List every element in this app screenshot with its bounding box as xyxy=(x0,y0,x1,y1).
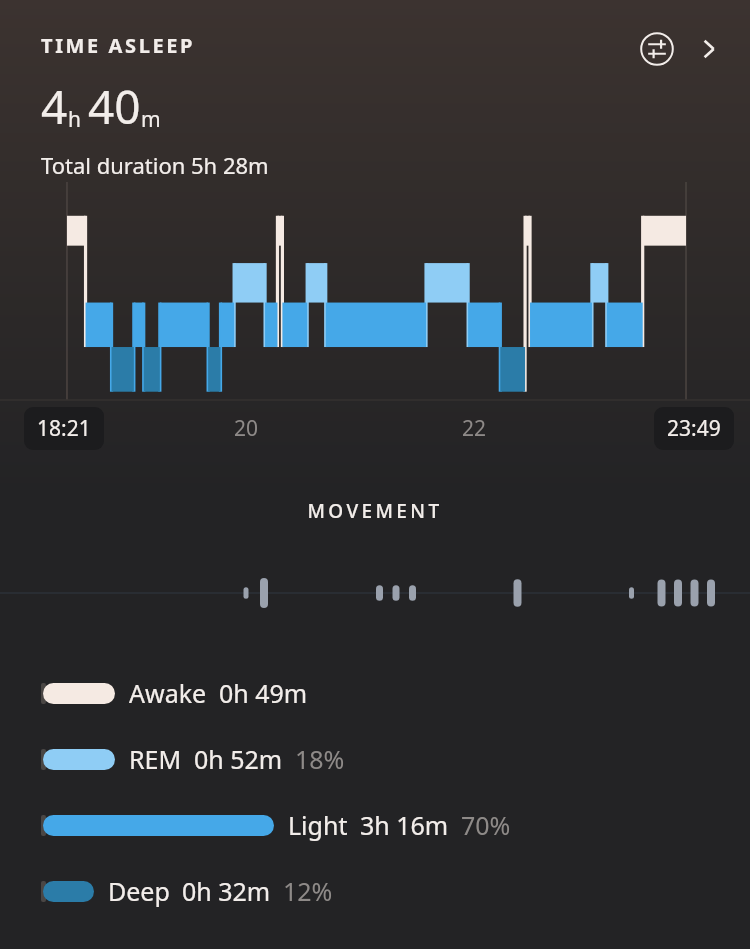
button[interactable]: Deep xyxy=(41,872,750,910)
staticText: 3h 16m xyxy=(360,808,449,842)
staticText: 22 xyxy=(462,414,487,443)
button[interactable]: Light xyxy=(41,806,750,844)
staticText: 23:49 xyxy=(667,414,721,443)
staticText: h xyxy=(68,105,81,134)
staticText: REM xyxy=(129,742,182,776)
staticText: Awake xyxy=(129,676,207,710)
staticText: Total duration 5h 28m xyxy=(41,150,269,180)
staticText: 18% xyxy=(295,742,345,776)
staticText: MOVEMENT xyxy=(0,498,750,524)
staticText: 0h 52m xyxy=(194,742,283,776)
staticText: m xyxy=(141,105,161,134)
staticText: 12% xyxy=(283,874,333,908)
staticText: 20 xyxy=(234,414,259,443)
staticText: Light xyxy=(288,808,348,842)
button[interactable]: Awake xyxy=(41,674,750,712)
button[interactable]: Adjust sleep settings xyxy=(634,26,680,72)
staticText: 0h 32m xyxy=(182,874,271,908)
staticText: TIME ASLEEP xyxy=(41,32,196,59)
button[interactable]: REM xyxy=(41,740,750,778)
staticText: 4 xyxy=(41,75,68,138)
button[interactable]: Open sleep details xyxy=(686,26,732,72)
staticText: 18:21 xyxy=(37,414,91,443)
staticText: Deep xyxy=(108,874,170,908)
staticText: 0h 49m xyxy=(219,676,308,710)
staticText: 70% xyxy=(461,808,511,842)
staticText: 40 xyxy=(88,75,141,138)
